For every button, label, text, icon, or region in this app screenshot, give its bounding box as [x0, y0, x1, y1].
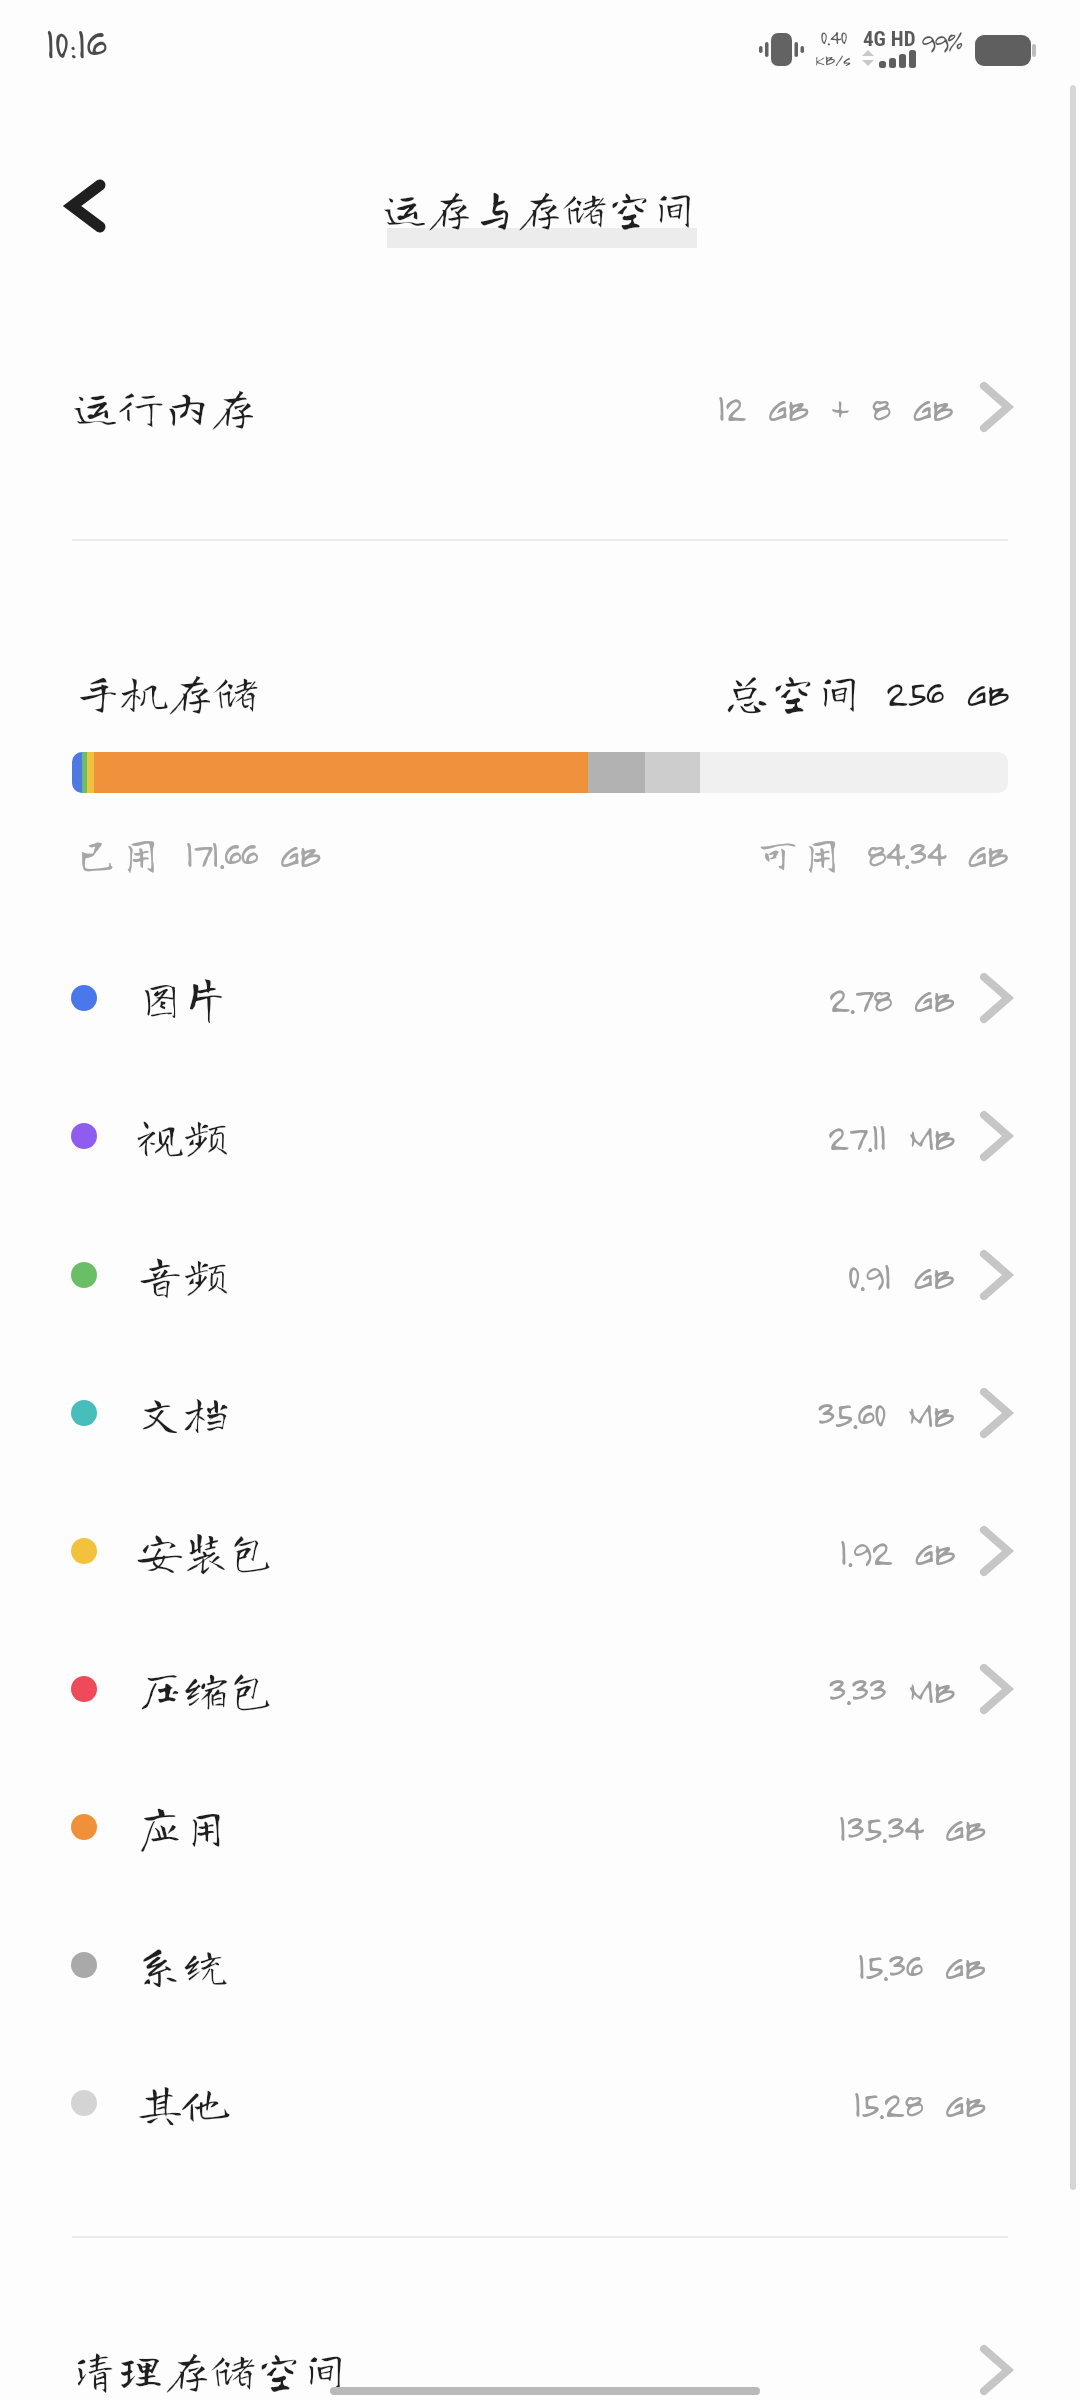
- staticText: 已用 171.66 GB: [75, 831, 320, 875]
- button[interactable]: 图片: [0, 938, 1080, 1058]
- staticText: 文档: [137, 1390, 229, 1436]
- staticText: 音频: [137, 1252, 229, 1298]
- staticText: 0.91 GB: [847, 1253, 954, 1297]
- button[interactable]: 视频: [0, 1076, 1080, 1196]
- button[interactable]: 系统: [0, 1905, 1080, 2025]
- staticText: 运存与存储空间: [382, 185, 698, 230]
- staticText: 1.92 GB: [839, 1529, 954, 1573]
- staticText: 10:16: [45, 16, 105, 68]
- staticText: 3.33 MB: [827, 1667, 954, 1711]
- staticText: KB/s: [815, 49, 851, 70]
- button[interactable]: 压缩包: [0, 1629, 1080, 1749]
- staticText: 应用: [137, 1804, 229, 1850]
- staticText: 清理存储空间: [72, 2347, 348, 2393]
- staticText: 其他: [137, 2080, 229, 2126]
- staticText: 可用 84.34 GB: [756, 831, 1008, 875]
- button[interactable]: 文档: [0, 1353, 1080, 1473]
- button[interactable]: 运行内存: [0, 347, 1080, 467]
- staticText: 12 GB + 8 GB: [717, 385, 952, 429]
- staticText: 15.36 GB: [857, 1943, 985, 1987]
- staticText: 总空间 256 GB: [724, 669, 1008, 715]
- staticText: 安装包: [137, 1528, 275, 1574]
- staticText: 35.60 MB: [816, 1391, 954, 1435]
- staticText: 0.40: [820, 24, 847, 49]
- staticText: 运行内存: [72, 384, 256, 430]
- staticText: 99%: [920, 24, 961, 58]
- staticText: 压缩包: [137, 1666, 275, 1712]
- staticText: 27.11 MB: [827, 1114, 954, 1158]
- button[interactable]: 清理存储空间: [0, 2310, 1080, 2400]
- button[interactable]: 音频: [0, 1215, 1080, 1335]
- button[interactable]: 应用: [0, 1767, 1080, 1887]
- staticText: 手机存储: [75, 669, 259, 715]
- button[interactable]: [58, 178, 114, 234]
- staticText: 系统: [137, 1942, 229, 1988]
- staticText: 4G HD: [863, 27, 916, 52]
- staticText: 135.34 GB: [838, 1805, 985, 1849]
- staticText: 2.78 GB: [828, 976, 954, 1020]
- staticText: 15.28 GB: [853, 2081, 985, 2125]
- button[interactable]: 安装包: [0, 1491, 1080, 1611]
- staticText: 视频: [137, 1113, 229, 1159]
- staticText: 图片: [137, 975, 229, 1021]
- button[interactable]: 其他: [0, 2043, 1080, 2163]
